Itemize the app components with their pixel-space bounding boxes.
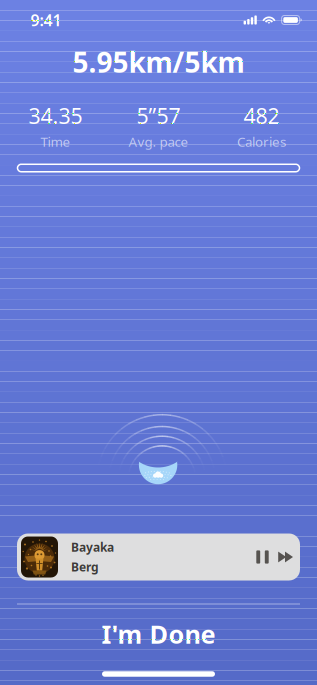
staticText: 5”57: [136, 101, 180, 130]
staticText: 482: [243, 101, 279, 130]
staticText: 9:41: [30, 9, 61, 31]
button[interactable]: Next track: [273, 537, 295, 577]
staticText: 34.35: [28, 101, 82, 130]
staticText: Avg. pace: [128, 133, 188, 150]
staticText: 5.95km/5km: [72, 43, 244, 81]
staticText: Berg: [71, 559, 99, 575]
staticText: Calories: [237, 133, 286, 150]
button[interactable]: Pause: [252, 537, 273, 577]
staticText: Time: [40, 133, 70, 150]
staticText: I'm Done: [101, 617, 215, 651]
button[interactable]: I'm Done: [0, 617, 317, 651]
button[interactable]: Bayaka: [17, 533, 300, 580]
staticText: Bayaka: [71, 539, 114, 555]
